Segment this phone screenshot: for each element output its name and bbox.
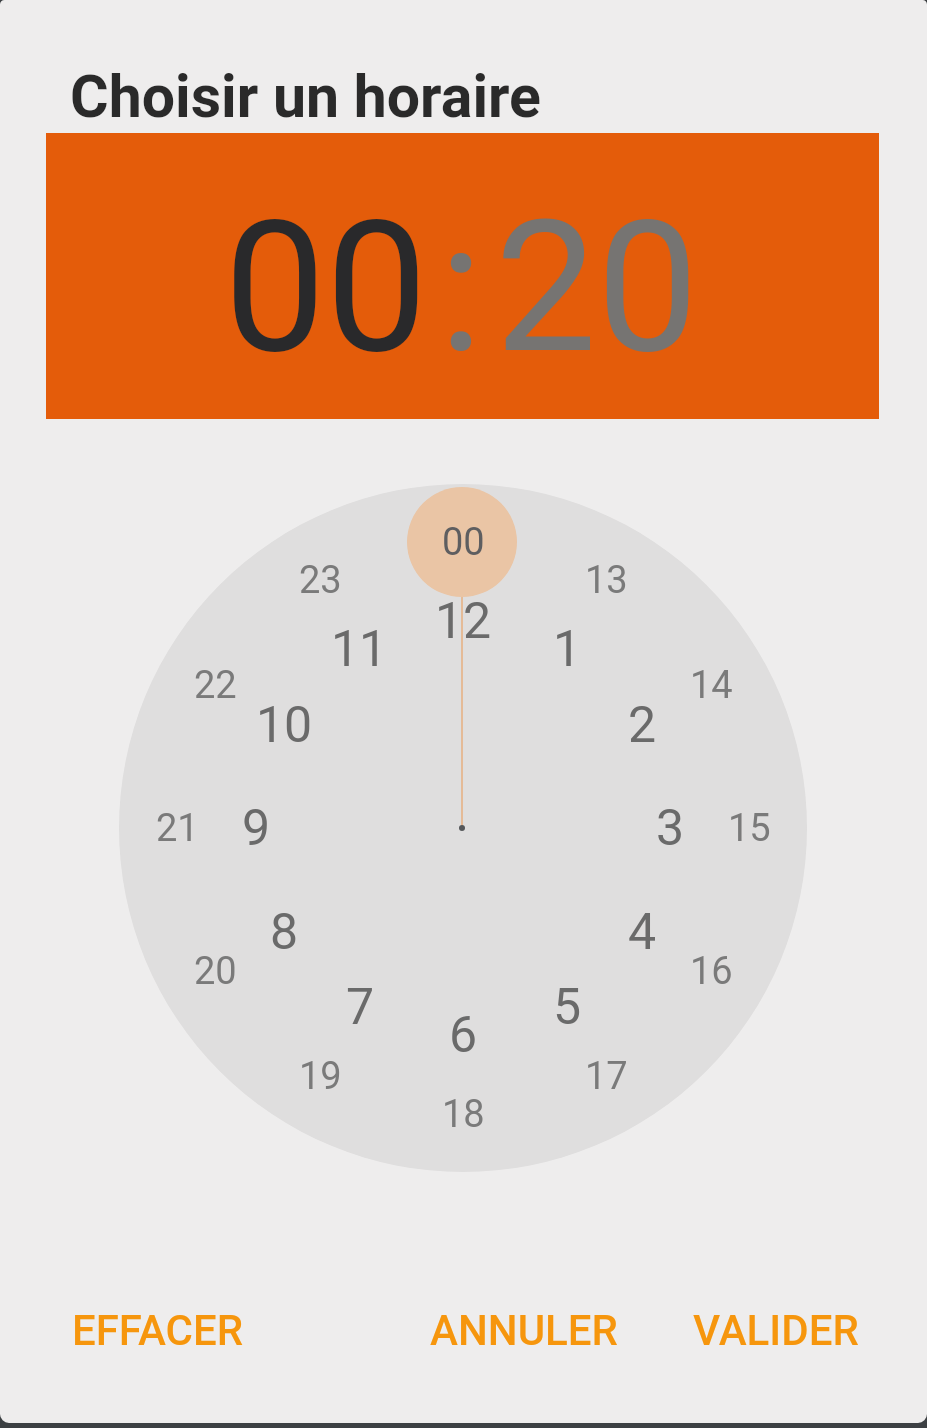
button[interactable]: 1 xyxy=(512,617,622,681)
button[interactable]: VALIDER xyxy=(666,1280,886,1380)
button[interactable]: 13 xyxy=(556,552,656,608)
button[interactable]: 21 xyxy=(127,800,227,856)
staticText: 18 xyxy=(442,1092,485,1137)
button[interactable]: 22 xyxy=(165,657,265,713)
button[interactable]: 12 xyxy=(408,589,518,653)
staticText: 5 xyxy=(553,978,582,1037)
staticText: 8 xyxy=(270,903,299,962)
button[interactable]: 4 xyxy=(587,900,697,964)
staticText: 12 xyxy=(435,592,492,651)
button[interactable]: 15 xyxy=(699,800,799,856)
staticText: 3 xyxy=(656,799,685,858)
button[interactable]: 7 xyxy=(305,975,415,1039)
staticText: 1 xyxy=(553,620,582,679)
button[interactable]: 3 xyxy=(615,796,725,860)
button[interactable]: 6 xyxy=(408,1003,518,1067)
staticText: 16 xyxy=(690,949,733,994)
staticText: 20 xyxy=(495,182,699,394)
staticText: 22 xyxy=(194,663,237,708)
staticText: 17 xyxy=(585,1054,628,1099)
staticText: 4 xyxy=(628,903,657,962)
button[interactable]: 18 xyxy=(413,1086,513,1142)
staticText: 00 xyxy=(224,182,428,394)
button[interactable]: 10 xyxy=(229,693,339,757)
staticText: EFFACER xyxy=(72,1306,243,1355)
staticText: 9 xyxy=(242,799,271,858)
button[interactable]: 8 xyxy=(229,900,339,964)
button[interactable]: EFFACER xyxy=(42,1280,272,1380)
button[interactable]: 17 xyxy=(556,1048,656,1104)
staticText: 00 xyxy=(442,520,485,565)
button[interactable]: 00 xyxy=(201,163,451,413)
button[interactable]: ANNULER xyxy=(404,1280,644,1380)
staticText: 2 xyxy=(628,696,657,755)
button[interactable]: 9 xyxy=(201,796,311,860)
staticText: 13 xyxy=(585,558,628,603)
button[interactable]: 16 xyxy=(661,943,761,999)
staticText: VALIDER xyxy=(693,1306,859,1355)
button[interactable]: 5 xyxy=(512,975,622,1039)
staticText: 23 xyxy=(299,558,342,603)
staticText: ANNULER xyxy=(430,1306,618,1355)
staticText: 7 xyxy=(346,978,375,1037)
button[interactable]: 20 xyxy=(165,943,265,999)
staticText: 11 xyxy=(331,620,388,679)
button[interactable]: 11 xyxy=(304,617,414,681)
staticText: 19 xyxy=(299,1054,342,1099)
button[interactable]: 00 xyxy=(413,514,513,570)
staticText: 6 xyxy=(449,1006,478,1065)
button[interactable]: 14 xyxy=(661,657,761,713)
staticText: Choisir un horaire xyxy=(70,62,541,131)
staticText: 21 xyxy=(156,806,199,851)
button[interactable]: 2 xyxy=(587,693,697,757)
button[interactable] xyxy=(407,487,517,597)
staticText: 20 xyxy=(194,949,237,994)
button[interactable]: 20 xyxy=(472,163,722,413)
staticText: : xyxy=(439,182,483,394)
button[interactable]: 23 xyxy=(270,552,370,608)
staticText: 10 xyxy=(256,696,313,755)
staticText: 14 xyxy=(690,663,733,708)
staticText: 15 xyxy=(728,806,771,851)
button[interactable]: 19 xyxy=(270,1048,370,1104)
